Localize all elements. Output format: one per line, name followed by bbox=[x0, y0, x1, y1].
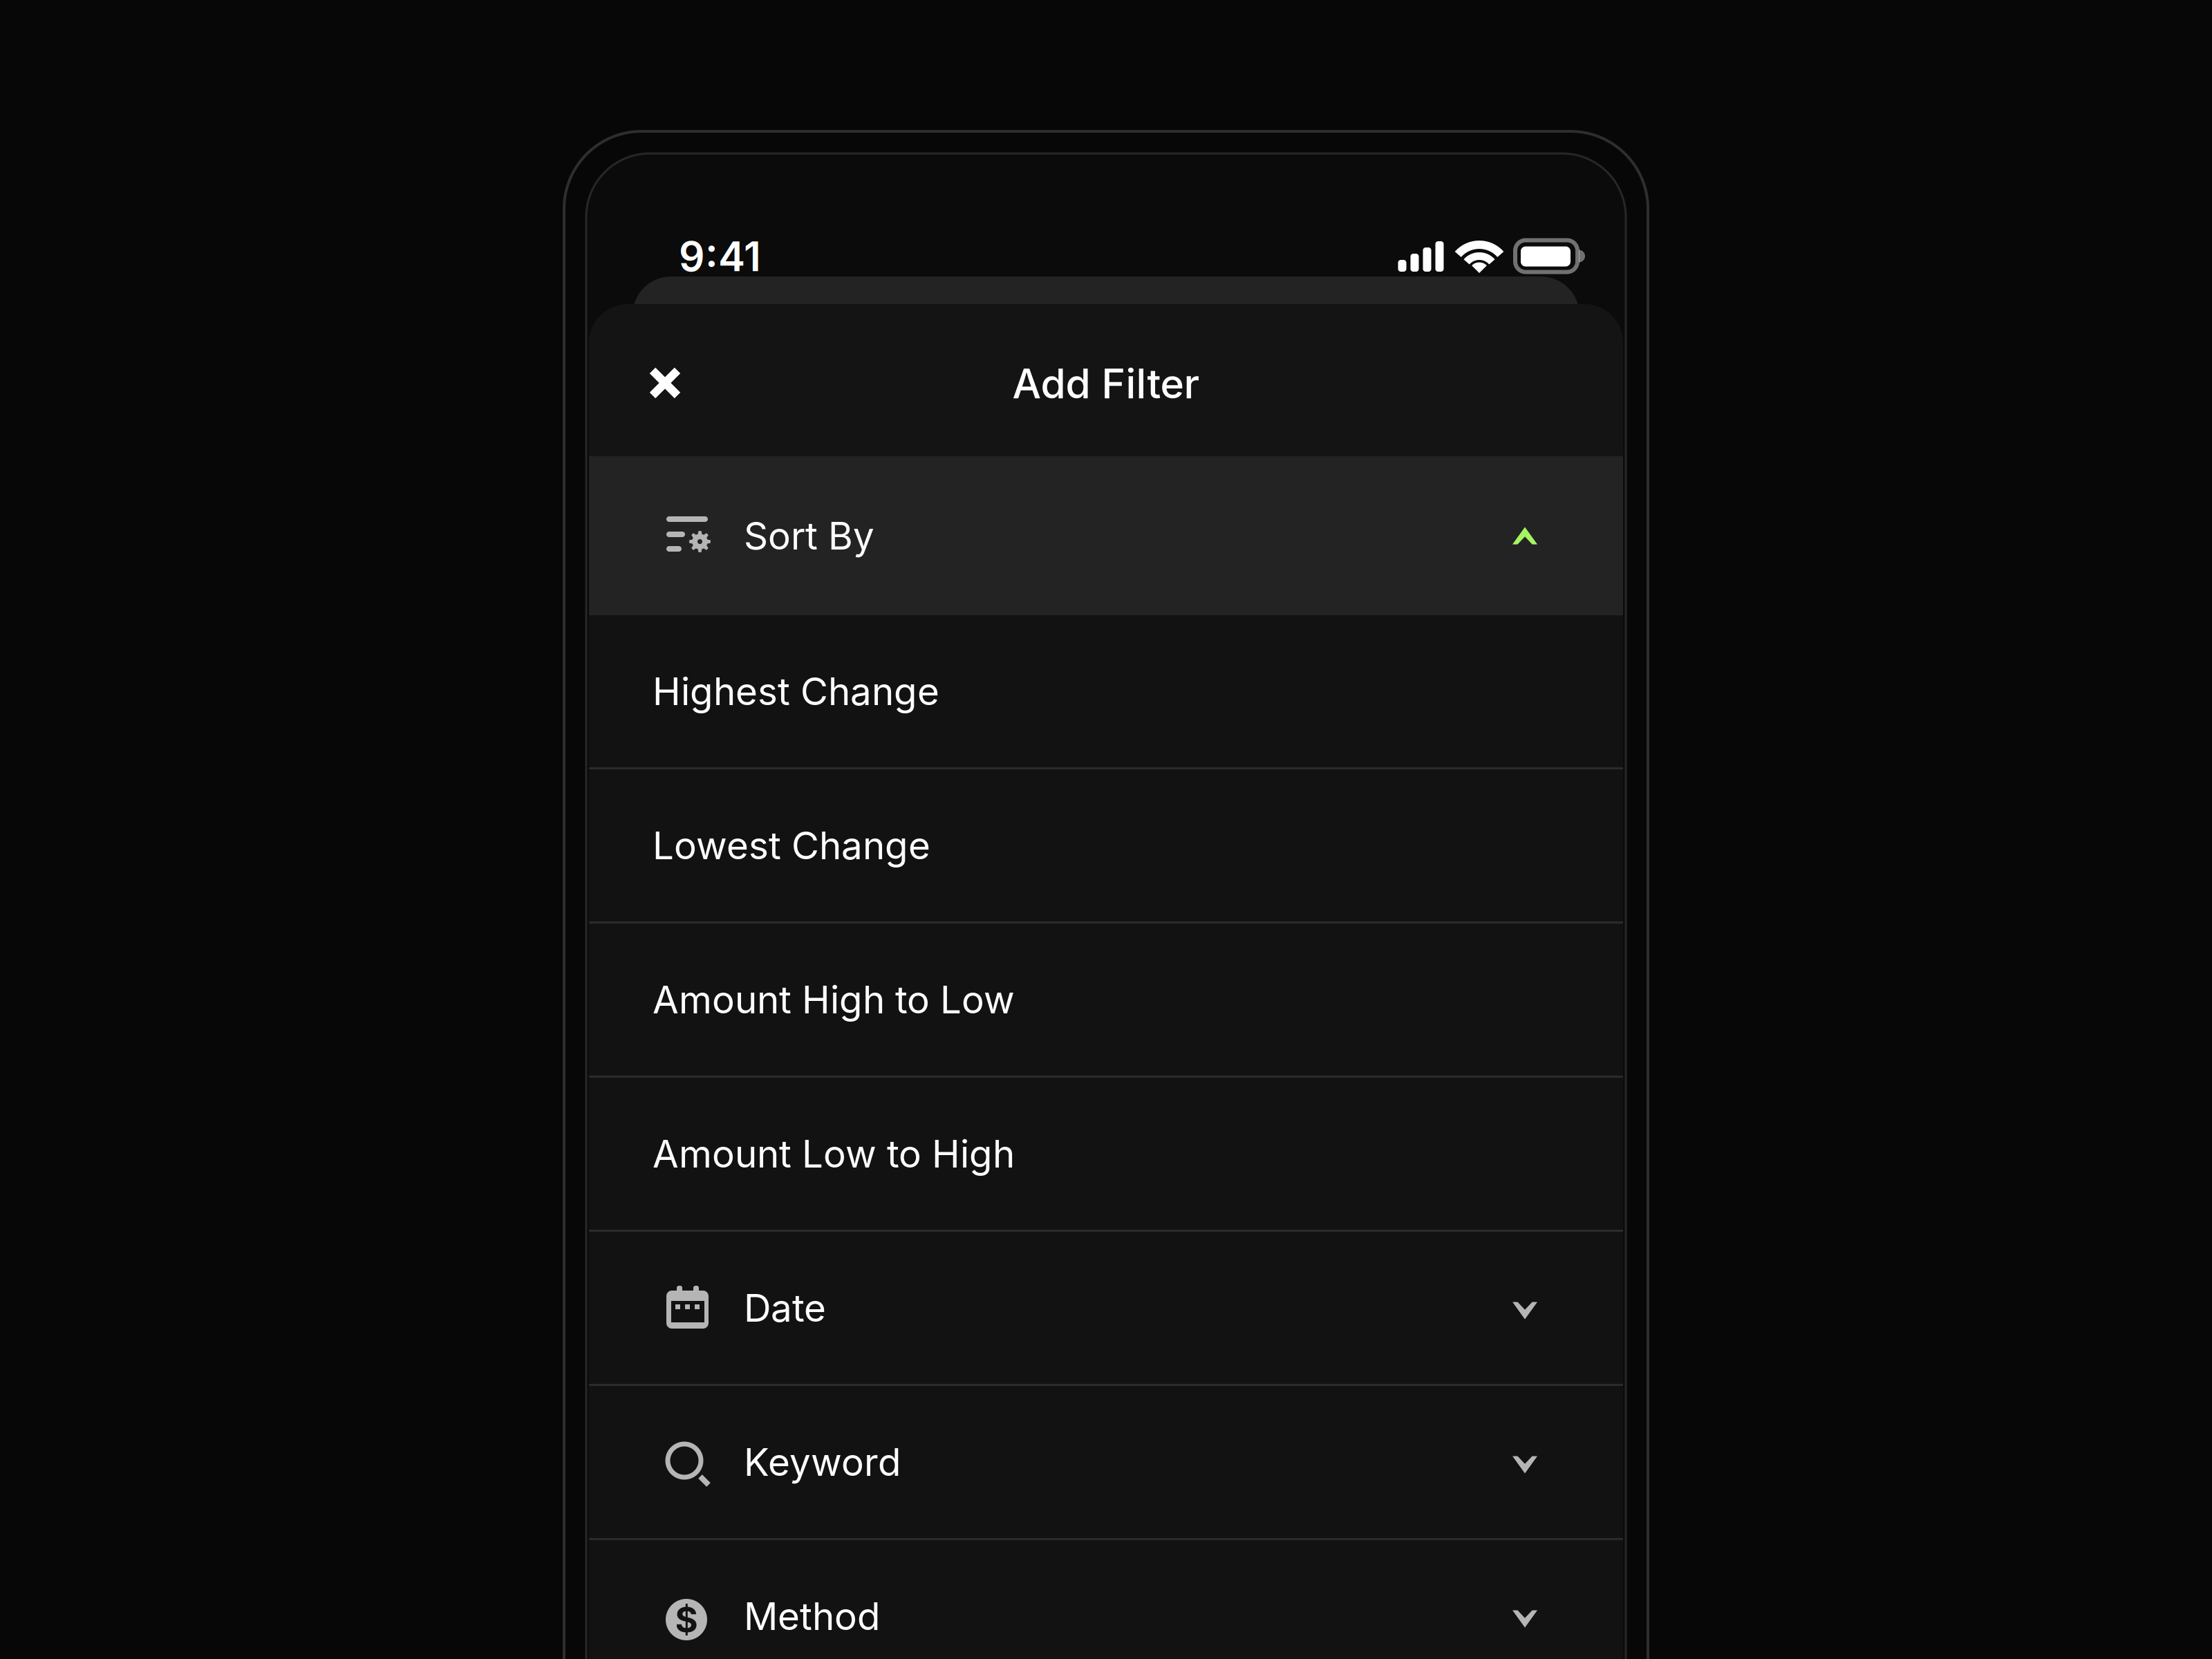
staticText: Lowest Change bbox=[653, 823, 930, 868]
button[interactable]: Close bbox=[624, 341, 701, 419]
staticText: Sort By bbox=[744, 513, 874, 559]
staticText: Add Filter bbox=[1012, 359, 1200, 408]
button[interactable]: Highest Change bbox=[589, 615, 1623, 767]
button[interactable]: Date bbox=[589, 1232, 1623, 1384]
staticText: Amount High to Low bbox=[653, 977, 1015, 1022]
button[interactable]: Lowest Change bbox=[589, 769, 1623, 921]
staticText: Date bbox=[744, 1285, 826, 1331]
button[interactable]: Keyword bbox=[589, 1386, 1623, 1538]
staticText: Amount Low to High bbox=[653, 1131, 1015, 1177]
button[interactable]: Sort By bbox=[589, 456, 1623, 615]
button[interactable]: $ bbox=[589, 1540, 1623, 1659]
staticText: Keyword bbox=[744, 1439, 901, 1485]
button[interactable]: Amount Low to High bbox=[589, 1078, 1623, 1230]
staticText: $ bbox=[675, 1598, 698, 1641]
staticText: Method bbox=[744, 1593, 880, 1639]
button[interactable]: Amount High to Low bbox=[589, 924, 1623, 1076]
staticText: Highest Change bbox=[653, 668, 939, 714]
staticText: 9:41 bbox=[679, 232, 761, 281]
